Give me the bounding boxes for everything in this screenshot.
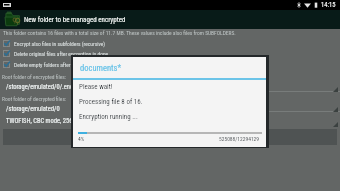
button[interactable]: Delete empty folders after encryption xyxy=(0,61,340,68)
staticText: /storage/emulated/0/.encrypted xyxy=(6,83,90,91)
staticText: Please wait! xyxy=(79,83,113,91)
staticText: Encrypt also files in subfolders (recurs… xyxy=(14,41,106,47)
staticText: New folder to be managed encrypted xyxy=(24,16,126,24)
button[interactable]: Encrypt also files in subfolders (recurs… xyxy=(0,40,340,47)
button[interactable]: TWOFISH, CBC mode, 256 xyxy=(2,113,340,127)
staticText: Processing file 8 of 16. xyxy=(79,98,143,106)
staticText: TWOFISH, CBC mode, 256 xyxy=(6,117,73,125)
button[interactable] xyxy=(3,129,337,145)
staticText: Encryption running ... xyxy=(79,113,138,121)
staticText: Root folder of encrypted files: xyxy=(2,74,67,80)
staticText: /storage/emulated/0 xyxy=(6,105,60,113)
staticText: This folder contains 16 files with a tot… xyxy=(3,30,236,36)
staticText: Delete empty folders after encryption xyxy=(14,62,95,68)
staticText: Root folder of decrypted files: xyxy=(2,96,67,102)
staticText: documents* xyxy=(80,63,122,73)
staticText: 14:15 xyxy=(321,1,336,9)
staticText: Delete original files after encryption i… xyxy=(14,51,109,57)
staticText: 4% xyxy=(78,136,85,142)
staticText: 525088/12294129 xyxy=(219,136,260,142)
button[interactable]: Delete original files after encryption i… xyxy=(0,50,340,57)
